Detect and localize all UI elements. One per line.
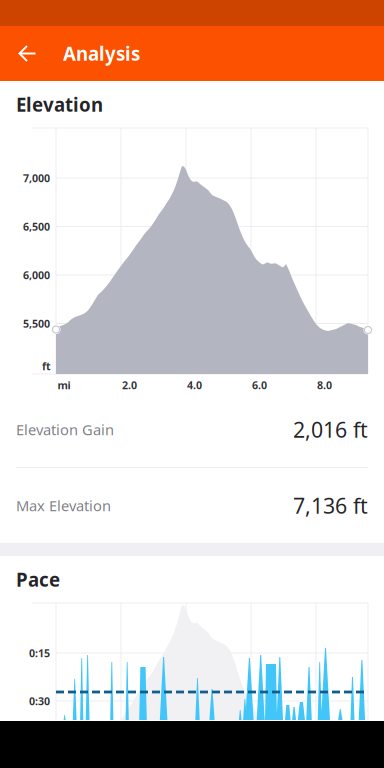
staticText: mi	[57, 378, 70, 392]
button[interactable]: Max Elevation	[0, 468, 384, 543]
staticText: 5,500	[23, 316, 50, 331]
staticText: 7,136 ft	[293, 491, 368, 520]
staticText: 2.0	[122, 378, 137, 392]
staticText: 8.0	[317, 378, 332, 392]
staticText: Analysis	[63, 41, 140, 66]
staticText: 6.0	[252, 378, 267, 392]
staticText: 0:30	[29, 694, 50, 708]
staticText: 6,000	[23, 268, 50, 282]
staticText: 0:15	[29, 646, 50, 660]
staticText: 4.0	[187, 378, 202, 392]
staticText: Max Elevation	[16, 496, 111, 515]
button[interactable]: Back	[0, 26, 55, 81]
staticText: 6,500	[23, 219, 50, 234]
staticText: ft	[42, 359, 51, 373]
staticText: Elevation Gain	[16, 420, 114, 439]
staticText: Elevation	[16, 92, 103, 117]
button[interactable]: Elevation Gain	[0, 392, 384, 467]
staticText: 2,016 ft	[293, 415, 368, 444]
staticText: Pace	[16, 567, 60, 592]
staticText: 7,000	[23, 171, 50, 185]
